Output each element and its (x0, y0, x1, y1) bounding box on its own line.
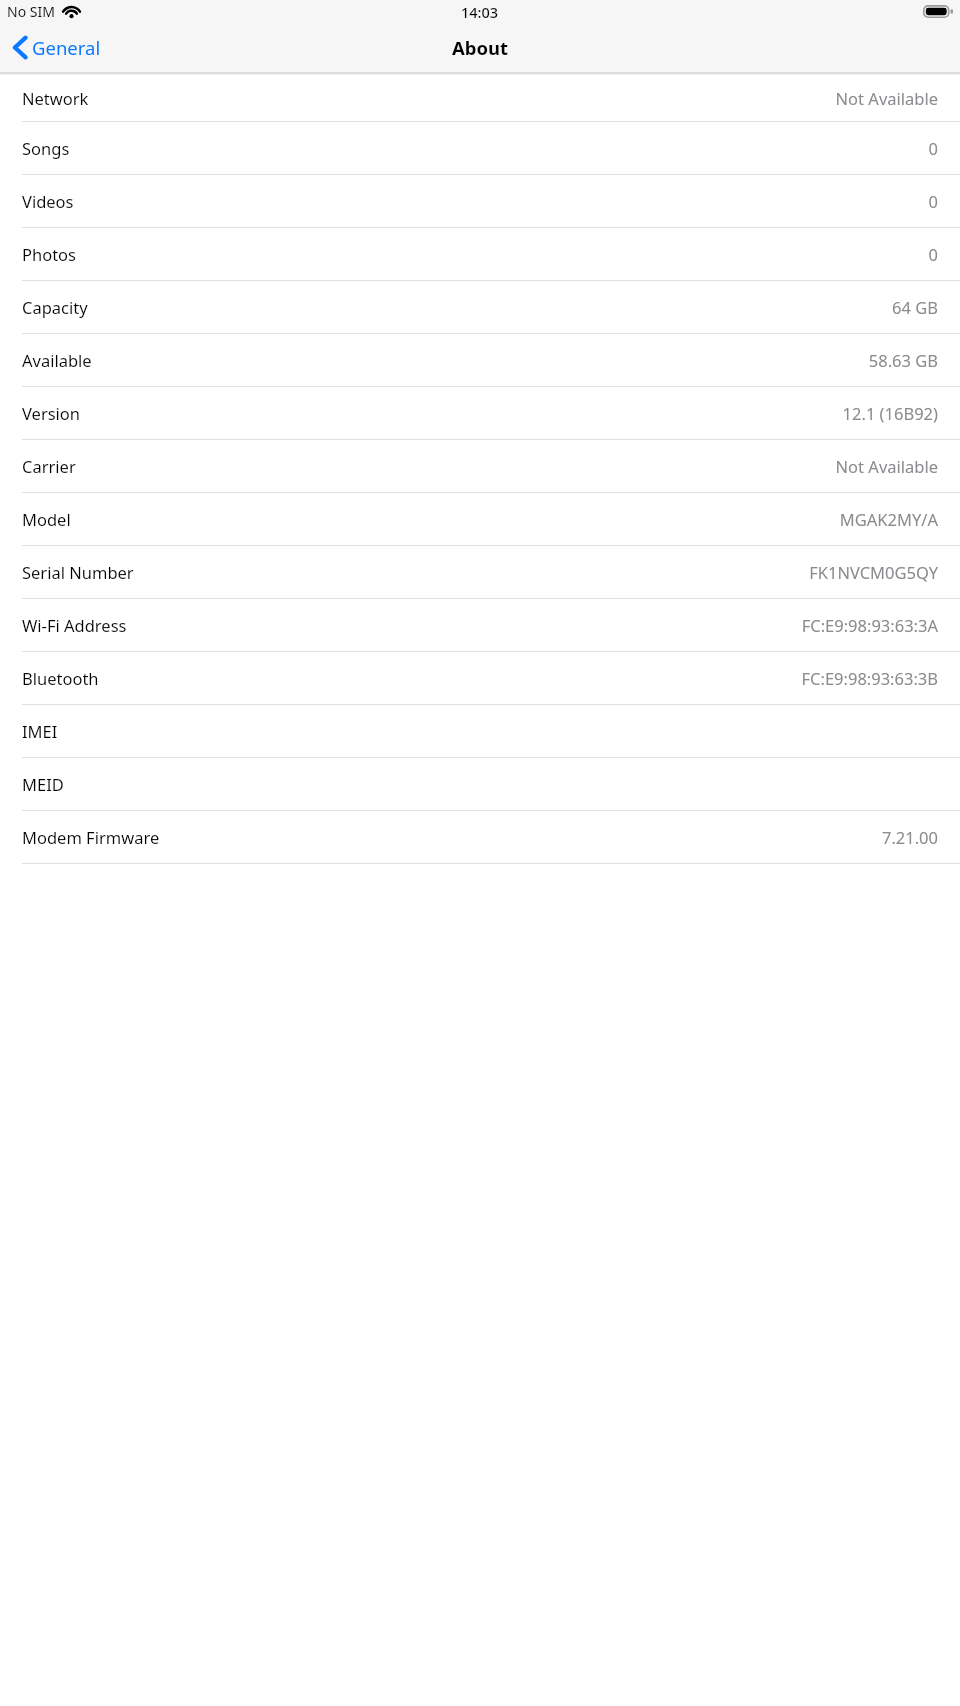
button[interactable]: Version (0, 387, 960, 439)
other: Back (13, 36, 27, 59)
button[interactable]: Back (0, 30, 113, 65)
staticText: General (32, 35, 101, 60)
staticText: MGAK2MY/A (839, 508, 938, 530)
staticText: Not Available (835, 455, 938, 477)
staticText: 0 (928, 243, 938, 265)
staticText: Carrier (22, 455, 76, 477)
staticText: About (452, 35, 509, 60)
staticText: FC:E9:98:93:63:3A (801, 614, 938, 636)
button[interactable]: MEID (0, 758, 960, 810)
button[interactable]: Model (0, 493, 960, 545)
button[interactable]: Serial Number (0, 546, 960, 598)
staticText: MEID (22, 773, 64, 795)
staticText: No SIM (7, 2, 55, 21)
button[interactable]: Bluetooth (0, 652, 960, 704)
button[interactable]: Songs (0, 122, 960, 174)
button[interactable]: Capacity (0, 281, 960, 333)
button[interactable]: Carrier (0, 440, 960, 492)
staticText: Model (22, 508, 71, 530)
staticText: Network (22, 87, 89, 109)
staticText: IMEI (22, 720, 58, 742)
other: Battery full (923, 5, 953, 18)
button[interactable]: Videos (0, 175, 960, 227)
staticText: Modem Firmware (22, 826, 160, 848)
staticText: 0 (928, 137, 938, 159)
staticText: Serial Number (22, 561, 134, 583)
staticText: FC:E9:98:93:63:3B (801, 667, 938, 689)
button[interactable]: Network (0, 75, 960, 121)
staticText: Photos (22, 243, 77, 265)
button[interactable]: Photos (0, 228, 960, 280)
staticText: Version (22, 402, 81, 424)
staticText: 14:03 (461, 2, 499, 22)
staticText: Not Available (835, 87, 938, 109)
staticText: 0 (928, 190, 938, 212)
staticText: 7.21.00 (881, 826, 938, 848)
staticText: Available (22, 349, 92, 371)
button[interactable]: Wi-Fi Address (0, 599, 960, 651)
button[interactable]: Available (0, 334, 960, 386)
button[interactable]: Modem Firmware (0, 811, 960, 863)
staticText: Videos (22, 190, 74, 212)
staticText: Capacity (22, 296, 88, 318)
staticText: 58.63 GB (868, 349, 938, 371)
staticText: 12.1 (16B92) (842, 402, 938, 424)
button[interactable]: IMEI (0, 705, 960, 757)
staticText: Wi-Fi Address (22, 614, 127, 636)
staticText: FK1NVCM0G5QY (809, 561, 938, 583)
staticText: Songs (22, 137, 70, 159)
staticText: Bluetooth (22, 667, 99, 689)
staticText: 64 GB (892, 296, 938, 318)
